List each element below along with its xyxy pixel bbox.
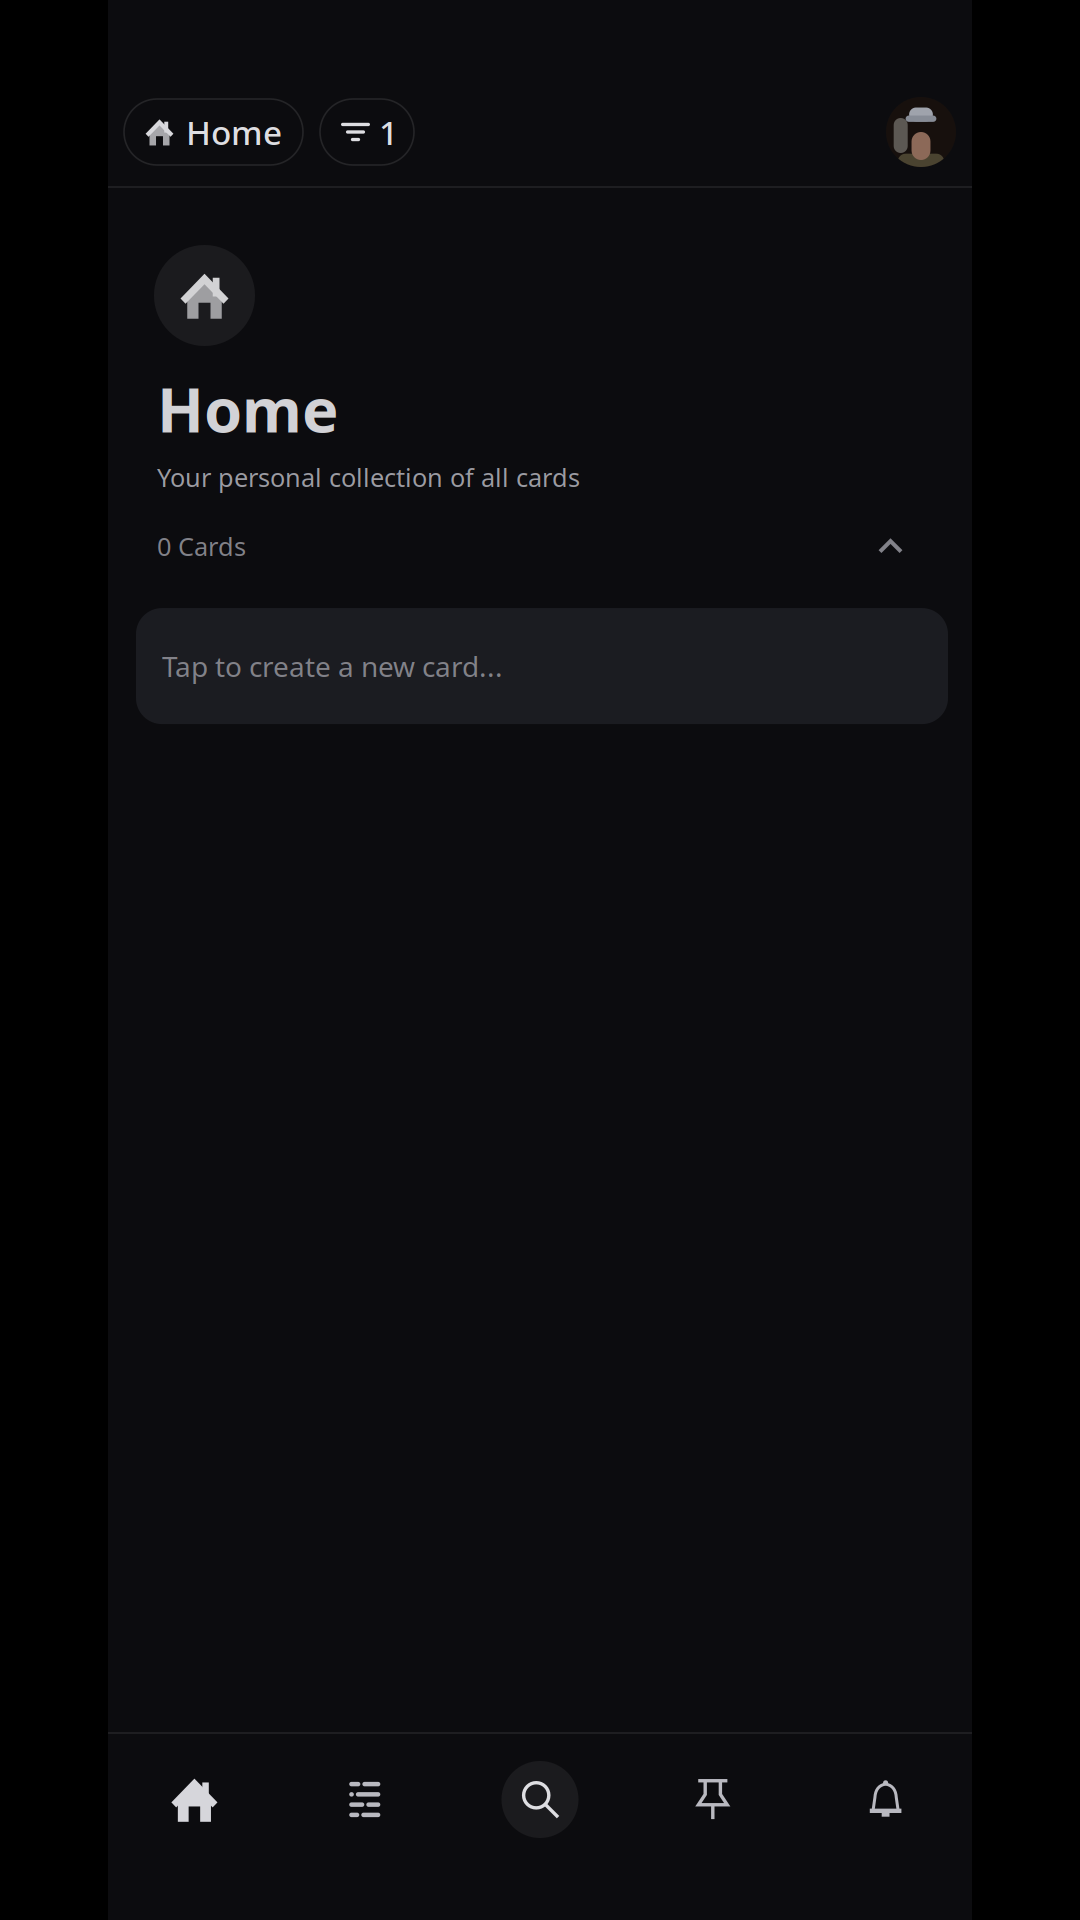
button[interactable]: 1 (320, 99, 414, 165)
button[interactable]: 0 Cards (108, 518, 972, 574)
button[interactable]: Lists (281, 1734, 454, 1865)
button[interactable]: Tap to create a new card... (108, 608, 972, 724)
button[interactable]: Profile (886, 97, 956, 167)
staticText: 0 Cards (157, 529, 246, 563)
button[interactable]: Home (124, 99, 303, 165)
button[interactable]: Notifications (799, 1734, 972, 1865)
button[interactable]: Pinned (626, 1734, 799, 1865)
staticText: Home (186, 110, 282, 154)
button[interactable]: Search (454, 1734, 626, 1865)
button[interactable]: Home (108, 1734, 281, 1865)
staticText: 1 (379, 110, 398, 154)
staticText: Home (157, 368, 339, 449)
staticText: Your personal collection of all cards (157, 460, 580, 494)
staticText: Tap to create a new card... (162, 647, 503, 685)
